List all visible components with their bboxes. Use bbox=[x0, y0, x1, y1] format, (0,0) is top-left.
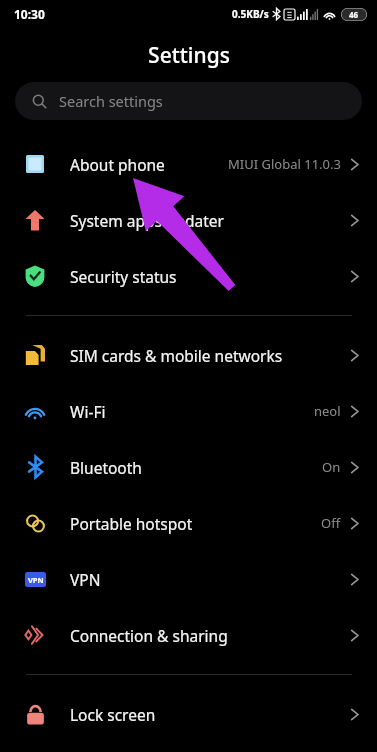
staticText: 10:30 bbox=[14, 6, 45, 22]
staticText: Settings bbox=[148, 41, 230, 70]
staticText: On bbox=[322, 458, 341, 476]
staticText: 46 bbox=[349, 9, 359, 20]
button[interactable]: Wi-Fi bbox=[0, 383, 377, 439]
staticText: SIM cards & mobile networks bbox=[70, 345, 350, 366]
button[interactable]: Search settings bbox=[15, 82, 362, 120]
staticText: VPN bbox=[28, 575, 44, 585]
staticText: Off bbox=[321, 514, 341, 532]
staticText: 0.5KB/s bbox=[232, 7, 269, 21]
button[interactable]: Lock screen bbox=[0, 686, 377, 742]
staticText: Bluetooth bbox=[70, 457, 322, 478]
button[interactable]: Portable hotspot bbox=[0, 495, 377, 551]
button[interactable]: About phone bbox=[0, 136, 377, 192]
button[interactable]: System apps updater bbox=[0, 192, 377, 248]
staticText: Search settings bbox=[59, 91, 163, 111]
staticText: About phone bbox=[70, 154, 228, 175]
staticText: VPN bbox=[70, 569, 350, 590]
staticText: Lock screen bbox=[70, 704, 350, 725]
button[interactable]: VPN bbox=[0, 551, 377, 607]
staticText: MIUI Global 11.0.3 bbox=[228, 155, 341, 173]
button[interactable]: Bluetooth bbox=[0, 439, 377, 495]
staticText: Portable hotspot bbox=[70, 513, 321, 534]
staticText: System apps updater bbox=[70, 210, 350, 231]
button[interactable]: SIM cards & mobile networks bbox=[0, 327, 377, 383]
staticText: Connection & sharing bbox=[70, 625, 350, 646]
button[interactable]: Security status bbox=[0, 248, 377, 304]
staticText: Wi-Fi bbox=[70, 401, 314, 422]
staticText: Security status bbox=[70, 266, 350, 287]
staticText: neol bbox=[314, 402, 341, 420]
button[interactable]: Connection & sharing bbox=[0, 607, 377, 663]
